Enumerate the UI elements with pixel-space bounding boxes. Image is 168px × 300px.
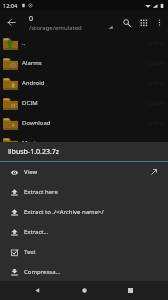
button[interactable]: Back (28, 281, 47, 300)
button[interactable]: Home (75, 281, 94, 300)
staticText: Movies (22, 139, 147, 147)
staticText: DCIM (22, 99, 147, 107)
button[interactable]: Movies (0, 133, 168, 153)
button[interactable]: DCIM (0, 93, 168, 113)
staticText: 12/28/19 (147, 41, 164, 46)
staticText: .. (22, 39, 147, 47)
button[interactable]: Sort order (102, 15, 118, 31)
button[interactable]: Grid view (135, 14, 152, 31)
staticText: Test (24, 248, 36, 256)
button[interactable]: Alarms (0, 53, 168, 73)
staticText: 12/28/19 (147, 101, 164, 106)
button[interactable]: More options (152, 15, 167, 30)
staticText: 12/28/19 (147, 61, 164, 66)
button[interactable]: Compressa... (0, 262, 168, 282)
button[interactable]: Extract to ./<Archive name>/ (0, 202, 168, 222)
staticText: /storage/emulated (29, 24, 82, 32)
button[interactable]: Recent apps (121, 281, 140, 300)
button[interactable]: Download (0, 113, 168, 133)
button[interactable]: Android (0, 73, 168, 93)
button[interactable]: Navigate up (0, 11, 23, 34)
staticText: Extract here (24, 188, 58, 196)
staticText: libusb-1.0.23.7z (8, 147, 60, 157)
staticText: 12:04 (3, 2, 18, 9)
staticText: Download (22, 119, 147, 127)
staticText: Extract... (24, 228, 49, 236)
staticText: Compressa... (24, 268, 61, 276)
button[interactable]: Extract... (0, 222, 168, 242)
staticText: 12/28/19 (147, 121, 164, 126)
button[interactable]: Search (118, 14, 135, 31)
staticText: Alarms (22, 59, 147, 67)
staticText: 12/28/19 (147, 81, 164, 86)
button[interactable]: View (0, 162, 168, 182)
button[interactable]: Extract here (0, 182, 168, 202)
button[interactable]: .. (0, 33, 168, 53)
button[interactable]: Test (0, 242, 168, 262)
staticText: View (24, 168, 38, 176)
staticText: Android (22, 79, 147, 87)
staticText: 0 (29, 14, 34, 24)
staticText: 12/28/19 (147, 141, 164, 146)
staticText: Extract to ./<Archive name>/ (24, 208, 104, 216)
